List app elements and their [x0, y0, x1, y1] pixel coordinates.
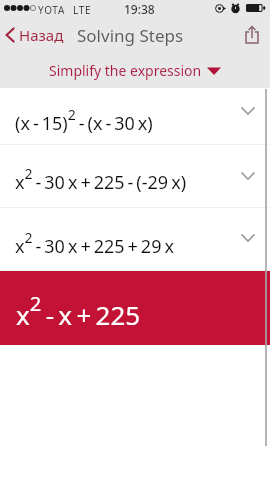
button[interactable]: x2 - 30 x + 225 - (-29 x): [0, 145, 270, 208]
staticText: x2 - 30 x + 225 - (-29 x): [15, 164, 187, 194]
button[interactable]: Simplify the expression: [45, 57, 225, 84]
staticText: YOTA: [38, 3, 66, 17]
button[interactable]: Назад: [0, 19, 72, 51]
staticText: (x - 15)2 - (x - 30 x): [15, 105, 153, 135]
staticText: Назад: [19, 25, 64, 45]
staticText: x2 - x + 225: [16, 289, 141, 333]
staticText: LTE: [73, 3, 92, 17]
button[interactable]: Share: [234, 18, 270, 52]
button[interactable]: x2 - 30 x + 225 + 29 x: [0, 208, 270, 271]
button[interactable]: (x - 15)2 - (x - 30 x): [0, 88, 270, 145]
staticText: Solving Steps: [77, 24, 184, 47]
staticText: 19:38: [124, 1, 155, 17]
staticText: x2 - 30 x + 225 + 29 x: [15, 228, 174, 258]
button[interactable]: x2 - x + 225: [0, 271, 270, 345]
staticText: Simplify the expression: [49, 61, 202, 80]
